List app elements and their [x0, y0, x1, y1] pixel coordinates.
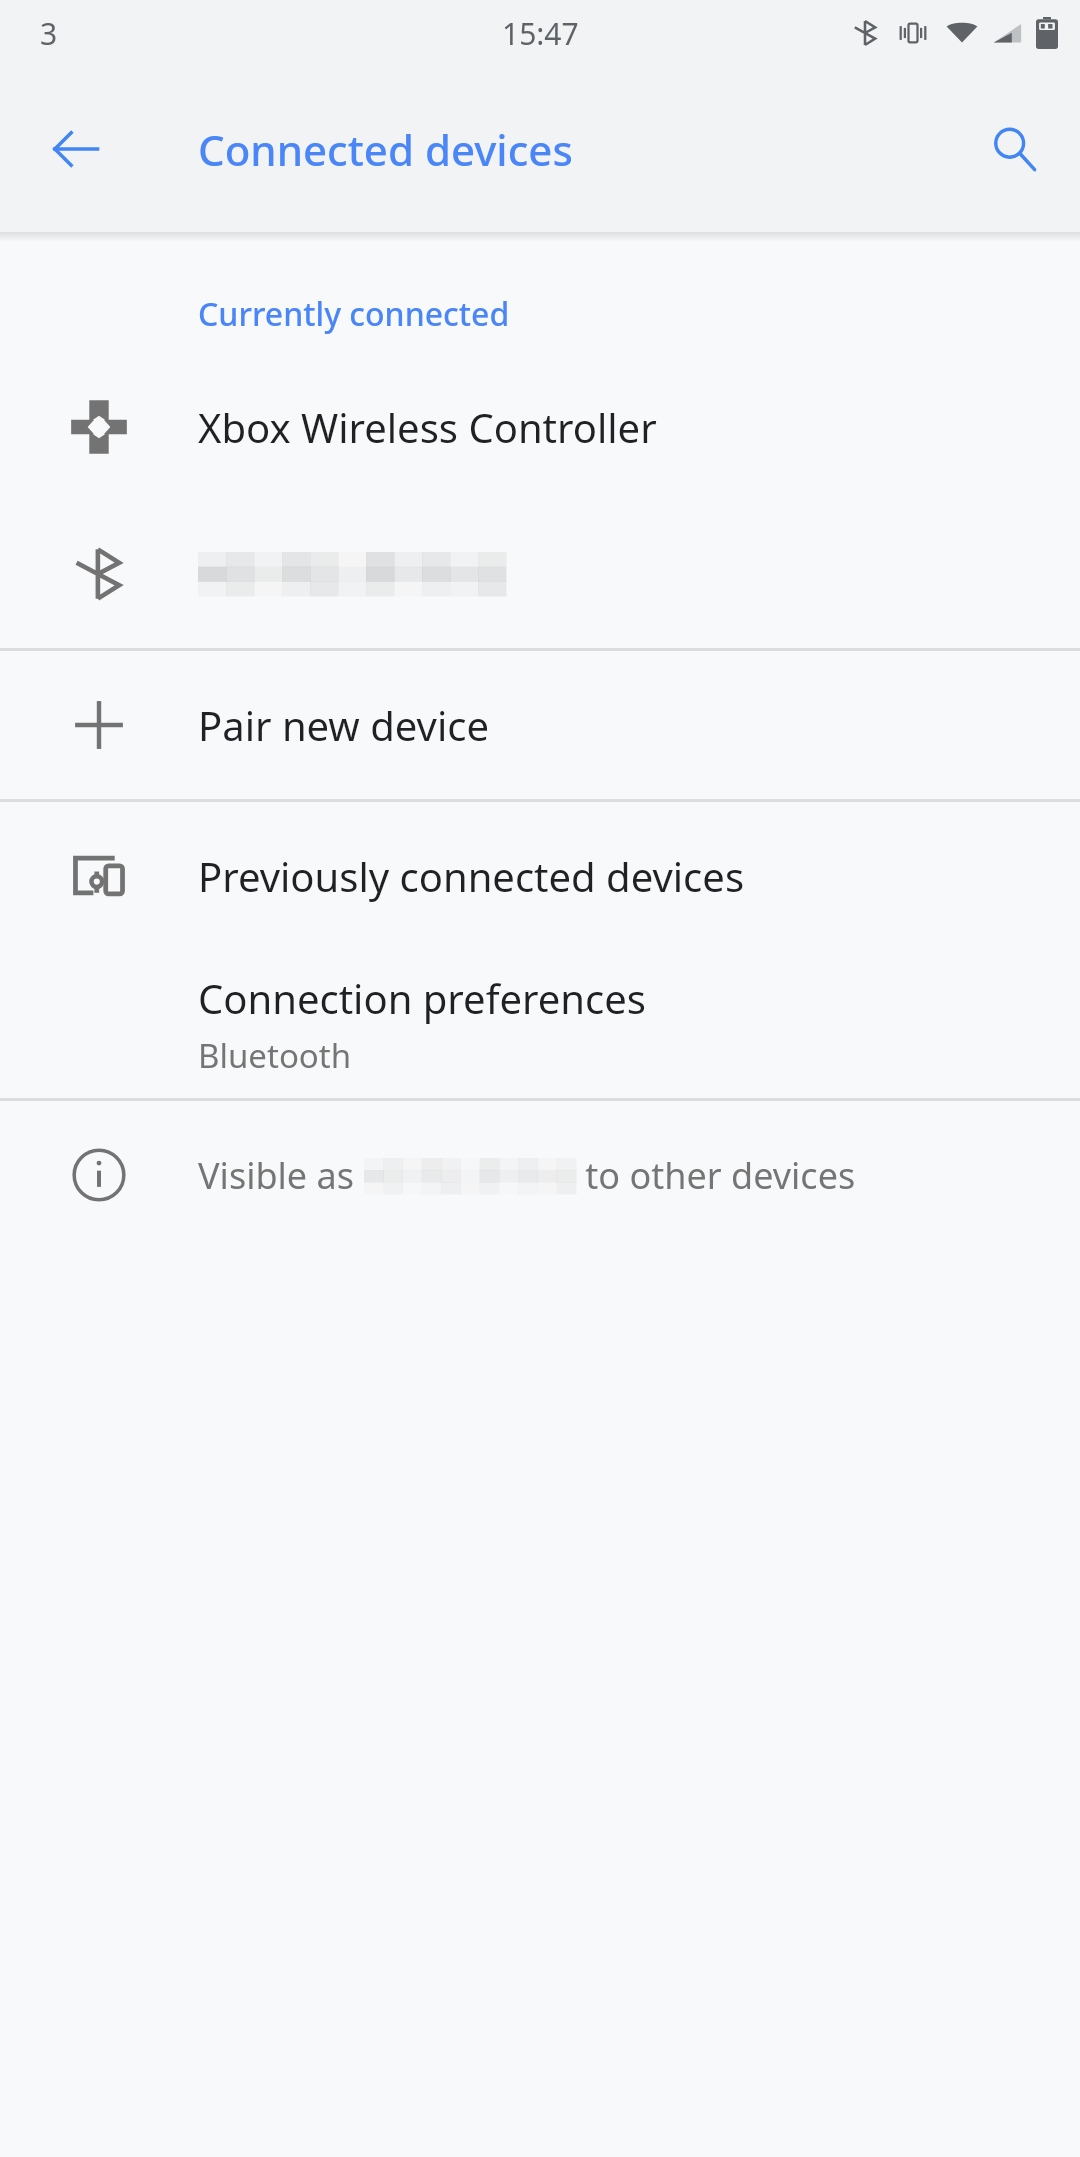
button[interactable]: Xbox Wireless Controller	[0, 354, 1080, 500]
button[interactable]: Previously connected devices	[0, 802, 1080, 950]
staticText: 15:47	[502, 13, 579, 54]
staticText: Xbox Wireless Controller	[198, 400, 657, 454]
staticText: Bluetooth	[198, 1033, 352, 1078]
staticText: Visible as	[198, 1151, 364, 1200]
button[interactable]	[0, 500, 1080, 648]
staticText: Previously connected devices	[198, 849, 745, 903]
button[interactable]: Back	[28, 101, 124, 197]
button[interactable]: Search	[966, 101, 1062, 197]
button[interactable]: Pair new device	[0, 651, 1080, 799]
staticText: Connection preferences	[198, 971, 646, 1025]
staticText: 3	[40, 13, 58, 54]
button[interactable]: Connection preferences	[0, 950, 1080, 1098]
staticText: Currently connected	[198, 292, 510, 336]
button[interactable]: Visible as	[0, 1101, 1080, 1249]
staticText: Connected devices	[198, 121, 573, 178]
staticText: Pair new device	[198, 698, 489, 752]
staticText: to other devices	[576, 1151, 856, 1200]
